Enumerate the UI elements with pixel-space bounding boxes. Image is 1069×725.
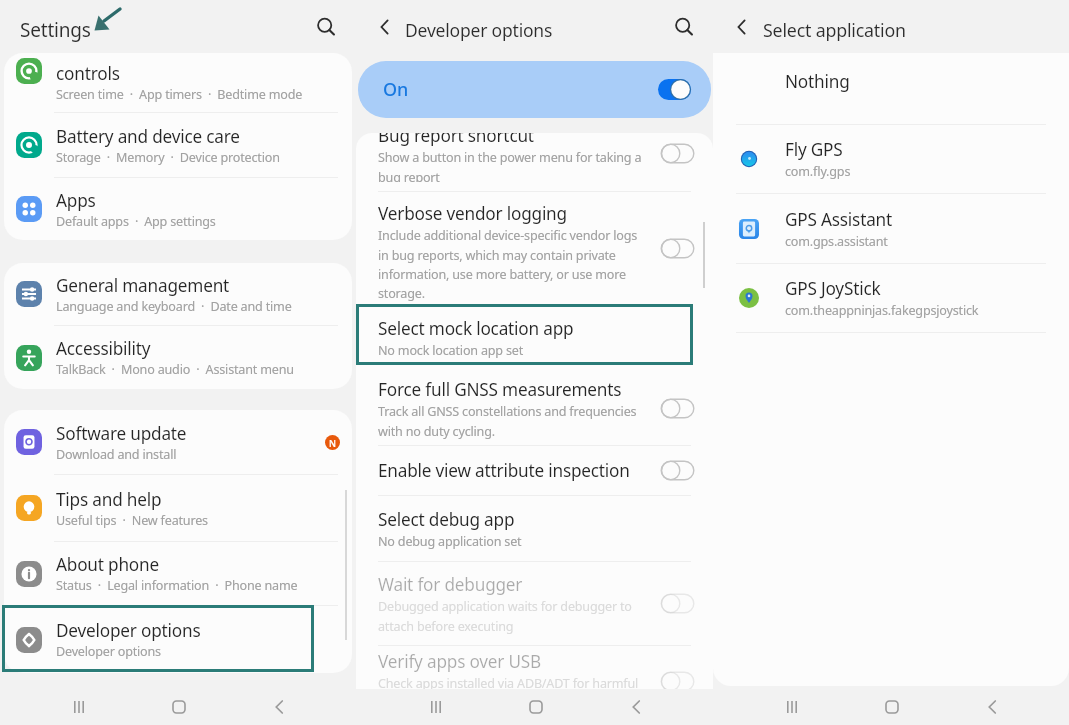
staticText: Select debug app	[378, 508, 515, 531]
staticText: Accessibility	[56, 337, 151, 360]
staticText: Track all GNSS constellations and freque…	[378, 403, 637, 440]
button[interactable]: Recents	[40, 689, 118, 725]
staticText: On	[383, 77, 408, 102]
staticText: Tips and help	[56, 488, 162, 511]
staticText: Settings	[20, 17, 91, 43]
button[interactable]: Select mock location app	[356, 304, 713, 372]
staticText: Select application	[763, 18, 906, 42]
staticText: Check apps installed via ADB/ADT for har…	[378, 675, 639, 712]
button[interactable]: Search	[313, 14, 339, 40]
button[interactable]: Accessibility	[4, 326, 352, 389]
staticText: Nothing	[785, 70, 850, 93]
button[interactable]: Nothing	[713, 54, 1069, 125]
button[interactable]: Verify apps over USB	[660, 671, 695, 692]
button[interactable]: Home	[853, 689, 931, 725]
staticText: Status · Legal information · Phone name	[56, 577, 298, 594]
button[interactable]: Wait for debugger	[660, 593, 695, 614]
button[interactable]: Battery and device care	[4, 113, 352, 178]
staticText: GPS JoyStick	[785, 277, 881, 300]
staticText: Apps	[56, 189, 96, 212]
button[interactable]: Software update	[4, 410, 352, 475]
staticText: Developer options	[405, 18, 553, 42]
button[interactable]: Verbose vendor logging	[356, 192, 713, 304]
button[interactable]: Bug report shortcut	[356, 133, 713, 192]
staticText: controls	[56, 62, 120, 85]
button[interactable]: Back	[955, 689, 1033, 725]
staticText: Developer options	[56, 619, 201, 642]
button[interactable]: GPS Assistant	[713, 194, 1069, 264]
button[interactable]: Back	[599, 689, 677, 725]
staticText: Debugged application waits for debugger …	[378, 598, 632, 635]
staticText: Default apps · App settings	[56, 213, 216, 230]
button[interactable]: About phone	[4, 542, 352, 606]
staticText: Software update	[56, 422, 187, 445]
staticText: General management	[56, 274, 230, 297]
button[interactable]: Recents	[753, 689, 831, 725]
staticText: Show a button in the power menu for taki…	[378, 149, 642, 182]
staticText: No debug application set	[378, 533, 522, 550]
staticText: GPS Assistant	[785, 208, 893, 231]
staticText: Force full GNSS measurements	[378, 378, 622, 401]
button[interactable]: Fly GPS	[713, 125, 1069, 194]
staticText: Developer options	[56, 643, 161, 660]
staticText: Useful tips · New features	[56, 512, 208, 529]
button[interactable]: Force full GNSS measurements	[356, 372, 713, 446]
staticText: Storage · Memory · Device protection	[56, 149, 280, 166]
button[interactable]: Enable view attribute inspection	[356, 446, 713, 496]
button[interactable]: Back	[373, 15, 397, 39]
staticText: N	[329, 437, 336, 449]
button[interactable]: Developer options on	[658, 79, 691, 100]
staticText: Bug report shortcut	[378, 133, 534, 147]
staticText: About phone	[56, 553, 159, 576]
button[interactable]: Wait for debugger	[356, 562, 713, 646]
button[interactable]: Verify apps over USB	[356, 646, 713, 716]
button[interactable]: Back	[242, 689, 320, 725]
staticText: Enable view attribute inspection	[378, 459, 630, 482]
staticText: com.gps.assistant	[785, 233, 888, 250]
button[interactable]: controls	[4, 53, 352, 113]
staticText: Screen time · App timers · Bedtime mode	[56, 86, 303, 103]
staticText: Select mock location app	[378, 317, 574, 340]
staticText: Battery and device care	[56, 125, 240, 148]
staticText: com.fly.gps	[785, 163, 851, 180]
button[interactable]: Recents	[397, 689, 475, 725]
button[interactable]: Select debug app	[356, 496, 713, 562]
button[interactable]: On	[358, 61, 711, 118]
staticText: Wait for debugger	[378, 573, 523, 596]
button[interactable]: Search	[671, 14, 697, 40]
staticText: Download and install	[56, 446, 177, 463]
staticText: TalkBack · Mono audio · Assistant menu	[56, 361, 294, 378]
button[interactable]: GPS JoyStick	[713, 264, 1069, 333]
staticText: No mock location app set	[378, 342, 524, 359]
button[interactable]: Home	[497, 689, 575, 725]
staticText: Verify apps over USB	[378, 650, 542, 673]
button[interactable]: Apps	[4, 178, 352, 240]
staticText: Fly GPS	[785, 138, 843, 161]
button[interactable]: Developer options	[4, 606, 352, 673]
staticText: com.theappninjas.fakegpsjoystick	[785, 302, 979, 319]
button[interactable]: Force full GNSS measurements	[660, 398, 695, 419]
button[interactable]: Verbose vendor logging	[660, 238, 695, 259]
staticText: Verbose vendor logging	[378, 202, 567, 225]
button[interactable]: Enable view attribute inspection	[660, 460, 695, 481]
staticText: Language and keyboard · Date and time	[56, 298, 292, 315]
button[interactable]: Back	[730, 15, 754, 39]
button[interactable]: Tips and help	[4, 475, 352, 542]
button[interactable]: Home	[140, 689, 218, 725]
button[interactable]: General management	[4, 263, 352, 326]
button[interactable]: Bug report shortcut	[660, 143, 695, 164]
staticText: Include additional device-specific vendo…	[378, 227, 638, 302]
